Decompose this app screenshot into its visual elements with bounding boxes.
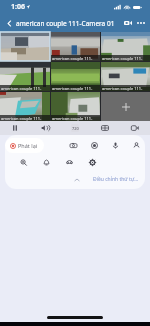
staticText: american couple 111-Camer...	[102, 56, 150, 61]
button[interactable]: Quality 720	[60, 121, 90, 135]
button[interactable]: american couple 111-Camer...	[51, 32, 100, 61]
button[interactable]	[0, 32, 50, 61]
staticText: american couple 111-Camer...	[1, 116, 50, 121]
button[interactable]: Record	[88, 139, 101, 152]
button[interactable]: Pause	[0, 121, 30, 135]
button[interactable]: Alarm	[40, 156, 53, 169]
button[interactable]: Phát lại	[5, 138, 44, 153]
button[interactable]: Person detection	[130, 139, 143, 152]
button[interactable]: Add camera	[121, 16, 135, 30]
staticText: 1:06	[11, 2, 25, 12]
staticText: american couple 111-Camer...	[102, 86, 150, 91]
button[interactable]: american couple 111-Camer...	[51, 62, 100, 91]
button[interactable]: american couple 111-Camer...	[0, 92, 50, 121]
button[interactable]: american couple 111-Camer...	[51, 92, 100, 121]
button[interactable]: Điều chỉnh thứ tự...	[72, 176, 141, 183]
button[interactable]: american couple 111-Camer...	[101, 32, 150, 61]
staticText: american couple 111-Camera 01	[16, 19, 121, 28]
staticText: Điều chỉnh thứ tự...	[93, 176, 139, 183]
button[interactable]: Add camera	[101, 92, 150, 121]
button[interactable]: More options	[135, 17, 147, 29]
button[interactable]: Back	[2, 16, 16, 30]
staticText: Phát lại	[18, 142, 38, 149]
staticText: american couple 111-Camer...	[52, 116, 100, 121]
button[interactable]: Volume	[30, 121, 60, 135]
button[interactable]: american couple 111-Camer...	[0, 62, 50, 91]
button[interactable]: Layout	[90, 121, 120, 135]
button[interactable]: Microphone	[109, 139, 122, 152]
staticText: american couple 111-Camer...	[52, 86, 100, 91]
button[interactable]: american couple 111-Camer...	[101, 62, 150, 91]
button[interactable]: Cast	[120, 121, 150, 135]
staticText: 720	[72, 126, 79, 131]
button[interactable]: Screenshot	[67, 139, 80, 152]
button[interactable]: Settings	[86, 156, 99, 169]
staticText: american couple 111-Camer...	[1, 86, 50, 91]
button[interactable]: Cloud storage	[63, 156, 76, 169]
button[interactable]: Zoom	[17, 156, 30, 169]
staticText: american couple 111-Camer...	[52, 56, 100, 61]
